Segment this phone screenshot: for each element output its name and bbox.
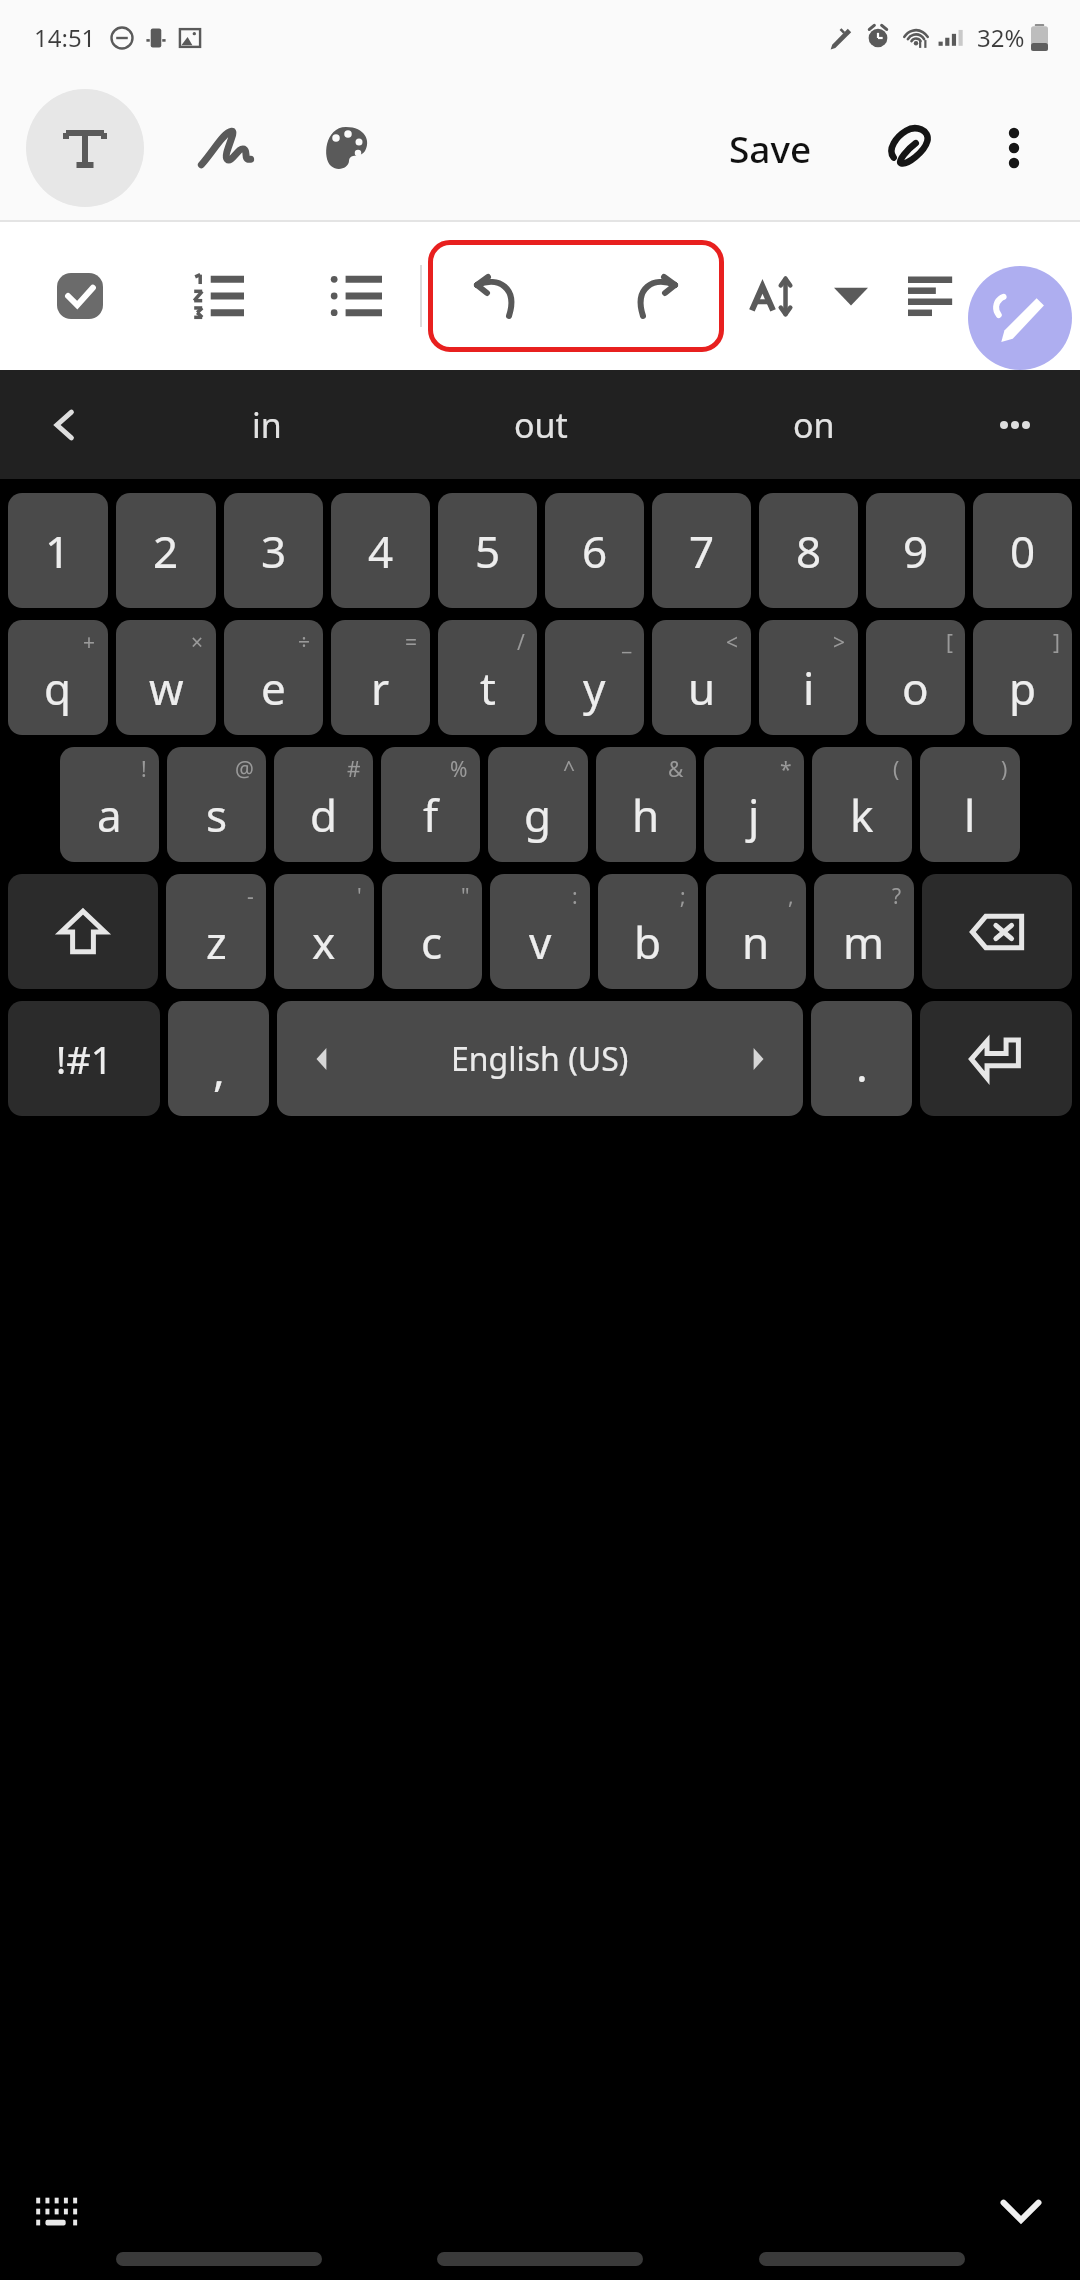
button[interactable]: ^ <box>488 747 588 862</box>
button[interactable]: 9 <box>866 493 965 608</box>
staticText: c <box>421 912 443 972</box>
button[interactable]: 5 <box>438 493 537 608</box>
staticText: z <box>206 912 227 972</box>
button[interactable]: Keyboard layout <box>24 2178 88 2242</box>
staticText: 4 <box>368 521 394 581</box>
button[interactable]: = <box>331 620 430 735</box>
button[interactable]: . <box>811 1001 912 1116</box>
staticText: * <box>780 755 792 784</box>
button[interactable]: Backspace <box>922 874 1072 989</box>
button[interactable]: [ <box>866 620 965 735</box>
staticText: i <box>803 658 815 718</box>
button[interactable]: 8 <box>759 493 858 608</box>
button[interactable]: > <box>759 620 858 735</box>
staticText: _ <box>622 628 632 657</box>
button[interactable]: out <box>404 370 677 479</box>
button[interactable]: Write with pen <box>968 266 1072 370</box>
button[interactable]: Shift <box>8 874 158 989</box>
button[interactable]: !#1 <box>8 1001 160 1116</box>
button[interactable]: % <box>381 747 480 862</box>
button[interactable]: * <box>704 747 804 862</box>
staticText: ' <box>357 882 362 911</box>
staticText: 6 <box>582 521 608 581</box>
button[interactable]: / <box>438 620 537 735</box>
button[interactable]: on <box>677 370 950 479</box>
staticText: ( <box>893 755 900 784</box>
button[interactable]: _ <box>545 620 644 735</box>
button[interactable]: , <box>168 1001 269 1116</box>
staticText: y <box>583 658 606 718</box>
button[interactable]: × <box>116 620 216 735</box>
button[interactable]: More options <box>972 106 1056 190</box>
button[interactable]: 6 <box>545 493 644 608</box>
button[interactable]: Previous <box>0 370 130 479</box>
staticText: 3 <box>261 521 287 581</box>
button[interactable]: Space, English (US) <box>277 1001 803 1116</box>
button[interactable]: ] <box>973 620 1072 735</box>
button[interactable]: 4 <box>331 493 430 608</box>
button[interactable]: ( <box>812 747 912 862</box>
button[interactable]: Numbered list <box>180 258 256 334</box>
staticText: ] <box>1053 628 1060 657</box>
staticText: : <box>572 882 578 911</box>
button[interactable]: " <box>382 874 482 989</box>
staticText: on <box>793 402 835 448</box>
staticText: % <box>450 755 468 784</box>
button[interactable]: # <box>274 747 373 862</box>
button[interactable]: Undo <box>454 257 532 335</box>
button[interactable]: 1 <box>8 493 108 608</box>
button[interactable]: , <box>706 874 806 989</box>
button[interactable]: 7 <box>652 493 751 608</box>
button[interactable]: + <box>8 620 108 735</box>
button[interactable]: in <box>130 370 404 479</box>
button[interactable]: Hide keyboard <box>986 2175 1056 2245</box>
staticText: p <box>1009 658 1037 718</box>
button[interactable]: Handwriting <box>180 102 272 194</box>
staticText: × <box>191 628 204 657</box>
button[interactable]: 0 <box>973 493 1072 608</box>
button[interactable]: Palette <box>300 102 392 194</box>
staticText: ; <box>680 882 686 911</box>
button[interactable]: & <box>596 747 696 862</box>
button[interactable]: Save <box>715 113 826 183</box>
button[interactable]: ÷ <box>224 620 323 735</box>
button[interactable]: ; <box>598 874 698 989</box>
staticText: u <box>688 658 716 718</box>
staticText: d <box>310 785 338 845</box>
staticText: - <box>247 882 254 911</box>
button[interactable]: 2 <box>116 493 216 608</box>
button[interactable]: ! <box>60 747 159 862</box>
button[interactable]: 3 <box>224 493 323 608</box>
button[interactable]: Checklist <box>42 258 118 334</box>
staticText: ^ <box>563 755 576 784</box>
button[interactable]: Enter <box>920 1001 1072 1116</box>
button[interactable]: Attach <box>868 106 952 190</box>
button[interactable]: ' <box>274 874 374 989</box>
staticText: # <box>347 755 361 784</box>
staticText: 5 <box>475 521 501 581</box>
staticText: . <box>856 1035 868 1095</box>
staticText: 2 <box>153 521 179 581</box>
staticText: l <box>964 785 976 845</box>
button[interactable]: Expand <box>820 265 882 327</box>
button[interactable]: - <box>166 874 266 989</box>
button[interactable]: More suggestions <box>950 370 1080 479</box>
staticText: t <box>480 658 496 718</box>
button[interactable]: : <box>490 874 590 989</box>
button[interactable]: Text mode <box>26 89 144 207</box>
button[interactable]: Bulleted list <box>318 258 394 334</box>
button[interactable]: ? <box>814 874 914 989</box>
button[interactable]: @ <box>167 747 266 862</box>
staticText: ÷ <box>298 628 311 657</box>
staticText: / <box>517 628 525 657</box>
staticText: < <box>726 628 739 657</box>
button[interactable]: Redo <box>620 257 698 335</box>
staticText: 32% <box>977 21 1025 54</box>
staticText: + <box>83 628 96 657</box>
button[interactable]: Alignment <box>896 260 968 332</box>
button[interactable]: < <box>652 620 751 735</box>
button[interactable]: Font size <box>738 260 810 332</box>
staticText: m <box>843 912 885 972</box>
staticText: 8 <box>796 521 822 581</box>
button[interactable]: ) <box>920 747 1020 862</box>
